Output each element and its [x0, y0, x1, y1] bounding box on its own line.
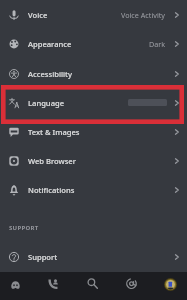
staticText: Appearance [28, 39, 72, 49]
button[interactable]: Profile [152, 272, 187, 300]
staticText: Voice Activity [121, 10, 166, 20]
button[interactable]: Appearance [0, 29, 187, 58]
button[interactable]: Servers [0, 272, 34, 300]
button[interactable]: Web Browser [0, 146, 187, 175]
staticText: Dark [149, 39, 166, 49]
staticText: Support [28, 252, 58, 262]
button[interactable]: Notifications [0, 175, 187, 204]
button[interactable]: Language [0, 88, 187, 117]
button[interactable]: Accessibility [0, 59, 187, 88]
staticText: Notifications [28, 185, 75, 195]
button[interactable]: Calls [35, 272, 72, 300]
button[interactable]: Voice [0, 0, 187, 29]
staticText: Text & Images [28, 127, 80, 137]
button[interactable]: Support [0, 242, 187, 271]
button[interactable]: Text & Images [0, 117, 187, 146]
staticText: Accessibility [28, 69, 72, 79]
staticText: SUPPORT [9, 224, 39, 232]
button[interactable]: Search [74, 272, 111, 300]
staticText: Web Browser [28, 156, 76, 166]
button[interactable]: Mentions [113, 272, 150, 300]
staticText: Language [28, 98, 65, 108]
staticText: Voice [28, 10, 48, 20]
